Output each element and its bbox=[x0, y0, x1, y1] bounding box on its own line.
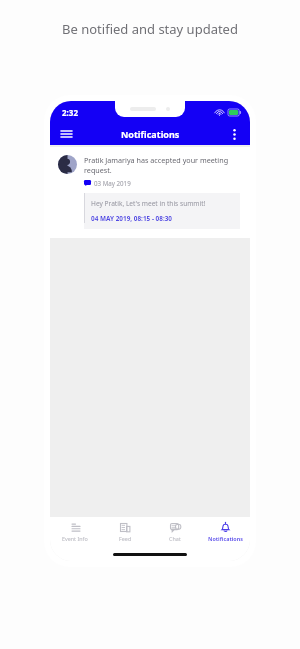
button[interactable]: Open navigation menu bbox=[56, 124, 76, 144]
button[interactable]: Chat bbox=[150, 517, 200, 547]
button[interactable]: More options bbox=[224, 124, 244, 144]
staticText: Pratik Jamariya has accepted your meetin… bbox=[84, 155, 240, 175]
staticText: Feed bbox=[119, 535, 132, 542]
button[interactable]: Pratik Jamariya has accepted your meetin… bbox=[50, 147, 250, 238]
button[interactable]: Notifications bbox=[200, 517, 250, 547]
staticText: Hey Pratik, Let's meet in this summit! bbox=[91, 199, 206, 208]
staticText: Be notified and stay updated bbox=[0, 20, 300, 38]
staticText: Notifications bbox=[208, 535, 243, 542]
staticText: 2:32 bbox=[62, 107, 78, 118]
staticText: 04 MAY 2019, 08:15 - 08:30 bbox=[91, 214, 173, 223]
staticText: 03 May 2019 bbox=[94, 179, 131, 187]
staticText: Event Info bbox=[62, 535, 88, 542]
staticText: Chat bbox=[169, 535, 181, 542]
staticText: Notifications bbox=[121, 128, 180, 140]
button[interactable]: Event Info bbox=[50, 517, 100, 547]
button[interactable]: Feed bbox=[100, 517, 150, 547]
